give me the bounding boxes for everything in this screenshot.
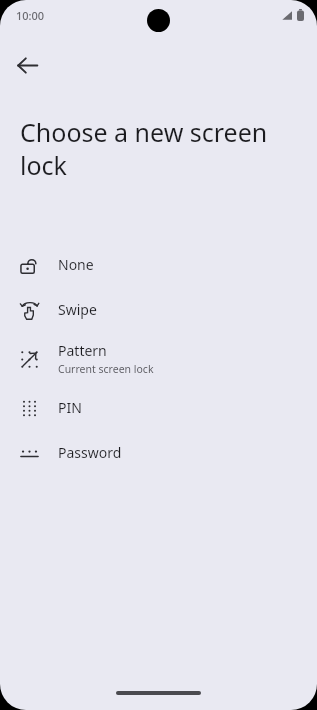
button[interactable]: Back bbox=[5, 43, 49, 87]
button[interactable]: PIN bbox=[0, 385, 317, 430]
button[interactable]: Pattern bbox=[0, 332, 317, 385]
staticText: Choose a new screen lock bbox=[20, 115, 291, 182]
staticText: 10:00 bbox=[16, 8, 45, 23]
button[interactable]: Password bbox=[0, 430, 317, 475]
staticText: None bbox=[58, 255, 94, 274]
button[interactable]: Swipe bbox=[0, 287, 317, 332]
button[interactable]: None bbox=[0, 242, 317, 287]
staticText: Password bbox=[58, 443, 122, 462]
staticText: Pattern bbox=[58, 341, 107, 360]
staticText: PIN bbox=[58, 398, 82, 417]
staticText: Swipe bbox=[58, 300, 97, 319]
staticText: Current screen lock bbox=[58, 362, 154, 376]
